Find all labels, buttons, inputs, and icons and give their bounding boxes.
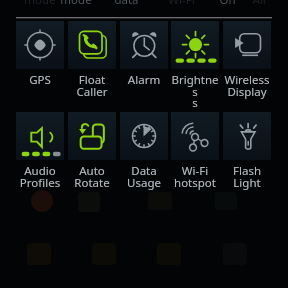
button[interactable]: Data Usage <box>118 112 170 190</box>
staticText: Air <box>252 0 268 8</box>
staticText: Flash Light <box>221 163 273 190</box>
button[interactable]: Float Caller <box>66 21 118 99</box>
staticText: Wi-Fi <box>168 0 195 8</box>
staticText: mode <box>24 0 56 8</box>
staticText: Audio Profiles <box>14 163 66 190</box>
staticText: Wireless Display <box>221 72 273 99</box>
staticText: Wi-Fi hotspot <box>169 163 221 190</box>
button[interactable]: Alarm <box>118 21 170 88</box>
button[interactable]: Wireless Display <box>221 21 273 99</box>
staticText: GPS <box>14 72 66 88</box>
button[interactable]: Wi-Fi hotspot <box>169 112 221 190</box>
staticText: Alarm <box>118 72 170 88</box>
staticText: data <box>114 0 139 8</box>
staticText: Brightnes s <box>169 72 221 110</box>
button[interactable]: Flash Light <box>221 112 273 190</box>
staticText: Float Caller <box>66 72 118 99</box>
button[interactable]: Auto Rotate <box>66 112 118 190</box>
staticText: On <box>219 0 236 8</box>
button[interactable]: Brightnes s <box>169 21 221 110</box>
button[interactable]: GPS <box>14 21 66 88</box>
button[interactable]: Audio Profiles <box>14 112 66 190</box>
staticText: Data Usage <box>118 163 170 190</box>
staticText: Auto Rotate <box>66 163 118 190</box>
staticText: mode <box>60 0 92 8</box>
